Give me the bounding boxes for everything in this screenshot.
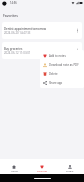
button[interactable]: Delete xyxy=(40,69,84,78)
staticText: Download note as PDF xyxy=(49,63,79,67)
staticText: Home xyxy=(11,169,18,172)
button[interactable]: Profile xyxy=(56,159,84,174)
button[interactable]: Dentist appointment tomorrow xyxy=(2,22,82,39)
button[interactable]: Buy groceries xyxy=(2,42,82,59)
staticText: Share app xyxy=(49,81,63,85)
staticText: Favorites xyxy=(37,169,48,172)
staticText: Add to notes xyxy=(49,54,66,58)
staticText: Profile xyxy=(66,169,74,172)
staticText: 14:56 xyxy=(10,1,17,5)
staticText: 2024-06-12 11:03:01 xyxy=(4,51,31,55)
button[interactable]: Home xyxy=(0,159,28,174)
staticText: Buy groceries xyxy=(4,47,23,51)
button[interactable]: More options xyxy=(74,27,81,34)
button[interactable]: Favorites xyxy=(28,159,56,174)
button[interactable]: Download note as PDF xyxy=(40,60,84,69)
button[interactable]: Add to notes xyxy=(40,51,84,60)
staticText: Delete xyxy=(49,72,58,76)
button[interactable]: Share app xyxy=(40,78,84,87)
staticText: 2024-06-20 14:47:33 xyxy=(4,31,31,35)
staticText: Dentist appointment tomorrow xyxy=(4,27,46,31)
staticText: Favorites xyxy=(3,13,18,18)
button[interactable]: More options xyxy=(74,47,81,54)
